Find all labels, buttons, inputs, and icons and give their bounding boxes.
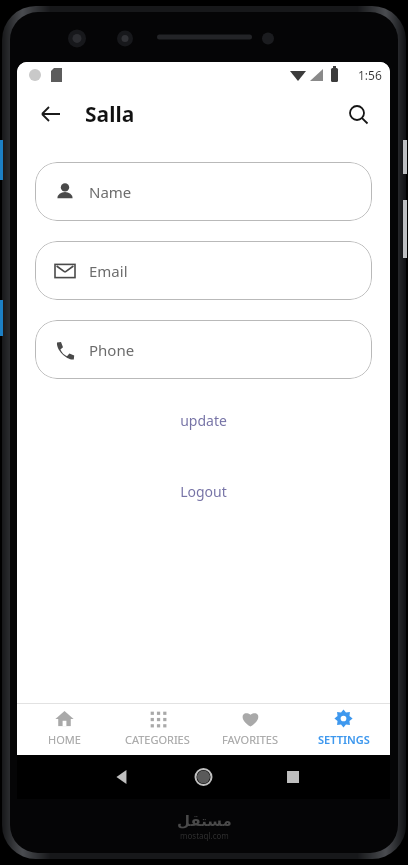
staticText: 1:56 <box>358 67 382 83</box>
button[interactable]: FAVORITES <box>204 704 297 755</box>
button[interactable]: HOME <box>17 704 111 755</box>
button[interactable]: Back <box>31 94 71 134</box>
staticText: Email <box>89 261 128 281</box>
staticText: update <box>180 411 227 430</box>
button[interactable]: Phone <box>35 320 372 379</box>
staticText: mostaql.com <box>180 830 229 841</box>
staticText: Phone <box>89 340 135 360</box>
staticText: CATEGORIES <box>125 732 190 747</box>
staticText: Name <box>89 182 132 202</box>
button[interactable]: Search <box>338 94 378 134</box>
staticText: SETTINGS <box>318 732 370 747</box>
button[interactable]: Email <box>35 241 372 300</box>
button[interactable]: Name <box>35 162 372 221</box>
staticText: Logout <box>180 482 227 501</box>
button[interactable]: CATEGORIES <box>111 704 204 755</box>
staticText: Salla <box>85 100 135 129</box>
staticText: HOME <box>48 732 81 747</box>
button[interactable]: Logout <box>166 476 241 507</box>
button[interactable]: SETTINGS <box>297 704 390 755</box>
button[interactable]: update <box>166 405 241 436</box>
staticText: مستقل <box>177 812 232 829</box>
staticText: FAVORITES <box>222 732 279 747</box>
